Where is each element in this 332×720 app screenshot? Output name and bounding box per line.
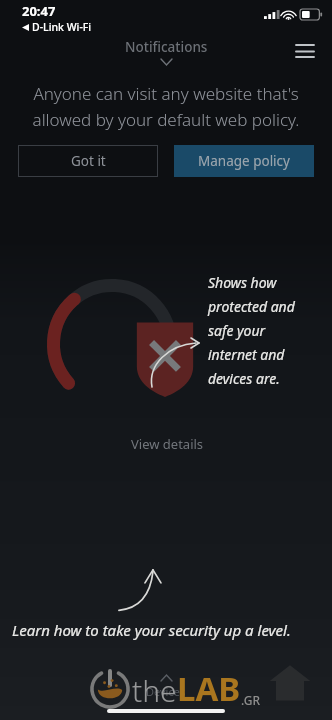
staticText: safe your bbox=[208, 321, 266, 340]
staticText: Manage policy bbox=[198, 152, 290, 170]
staticText: D-Link Wi-Fi bbox=[32, 20, 92, 34]
button[interactable]: Devices bbox=[140, 669, 192, 705]
button[interactable]: Notifications bbox=[125, 38, 208, 65]
staticText: Got it bbox=[71, 152, 106, 170]
staticText: devices are. bbox=[208, 369, 280, 388]
button[interactable]: Menu bbox=[288, 34, 322, 68]
staticText: Notifications bbox=[125, 38, 208, 56]
staticText: .GR bbox=[241, 692, 260, 708]
staticText: 20:47 bbox=[22, 2, 56, 20]
button[interactable]: View details bbox=[125, 432, 210, 456]
staticText: the bbox=[132, 670, 177, 711]
staticText: Shows how bbox=[208, 273, 277, 292]
staticText: LAB bbox=[177, 666, 241, 711]
staticText: protected and bbox=[208, 297, 295, 316]
staticText: View details bbox=[131, 435, 204, 453]
button[interactable]: Got it bbox=[18, 145, 158, 177]
staticText: Devices bbox=[146, 684, 186, 699]
button[interactable]: Manage policy bbox=[174, 145, 314, 177]
staticText: Anyone can visit any website that's allo… bbox=[18, 82, 314, 131]
staticText: Learn how to take your security up a lev… bbox=[12, 620, 291, 640]
staticText: internet and bbox=[208, 345, 285, 364]
